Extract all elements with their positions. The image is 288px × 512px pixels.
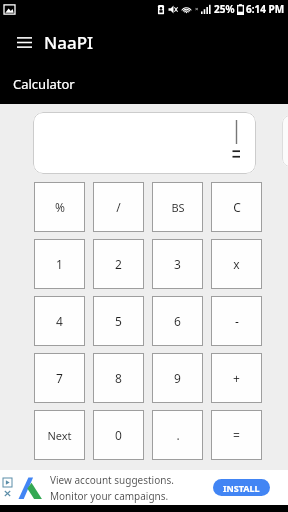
staticText: 1 [56, 256, 63, 272]
staticText: 4 [56, 313, 63, 329]
staticText: 5 [115, 313, 122, 329]
staticText: 25% [214, 2, 235, 16]
staticText: 6 [174, 313, 181, 329]
staticText: / [116, 199, 121, 215]
button[interactable]: 8 [93, 353, 144, 403]
staticText: = [233, 427, 240, 443]
button[interactable]: C [211, 182, 262, 232]
staticText: INSTALL [223, 482, 260, 494]
staticText: - [235, 313, 239, 329]
button[interactable]: 1 [34, 239, 85, 289]
button[interactable]: . [152, 410, 203, 460]
staticText: NaaPI [44, 31, 94, 54]
staticText: 2 [115, 256, 122, 272]
staticText: 0 [115, 427, 122, 443]
button[interactable]: Advertisement: View account suggestions [0, 470, 288, 505]
staticText: 6:14 PM [246, 2, 285, 16]
staticText: 9 [174, 370, 181, 386]
button[interactable]: 6 [152, 296, 203, 346]
staticText: Monitor your campaigns. [50, 489, 169, 503]
staticText: % [55, 199, 65, 215]
button[interactable]: 4 [34, 296, 85, 346]
button[interactable]: Expression field [33, 112, 256, 174]
button[interactable]: 9 [152, 353, 203, 403]
staticText: Calculator [13, 75, 75, 93]
button[interactable]: 7 [34, 353, 85, 403]
staticText: C [233, 199, 241, 215]
button[interactable]: Next expression field [282, 115, 288, 167]
button[interactable]: % [34, 182, 85, 232]
button[interactable]: BS [152, 182, 203, 232]
button[interactable]: Open navigation drawer [10, 28, 38, 56]
staticText: x [233, 256, 240, 272]
button[interactable]: 0 [93, 410, 144, 460]
staticText: 7 [56, 370, 63, 386]
staticText: × [195, 5, 199, 13]
staticText: + [233, 370, 240, 386]
staticText: View account suggestions. [50, 473, 174, 487]
button[interactable]: - [211, 296, 262, 346]
button[interactable]: 3 [152, 239, 203, 289]
button[interactable]: / [93, 182, 144, 232]
staticText: BS [171, 200, 185, 215]
button[interactable]: x [211, 239, 262, 289]
button[interactable]: = [211, 410, 262, 460]
button[interactable]: Next [34, 410, 85, 460]
button[interactable]: + [211, 353, 262, 403]
button[interactable]: 5 [93, 296, 144, 346]
button[interactable]: 2 [93, 239, 144, 289]
button[interactable]: INSTALL [213, 479, 270, 496]
staticText: . [176, 427, 180, 443]
staticText: 8 [115, 370, 122, 386]
staticText: 3 [174, 256, 181, 272]
staticText: Next [47, 428, 72, 443]
